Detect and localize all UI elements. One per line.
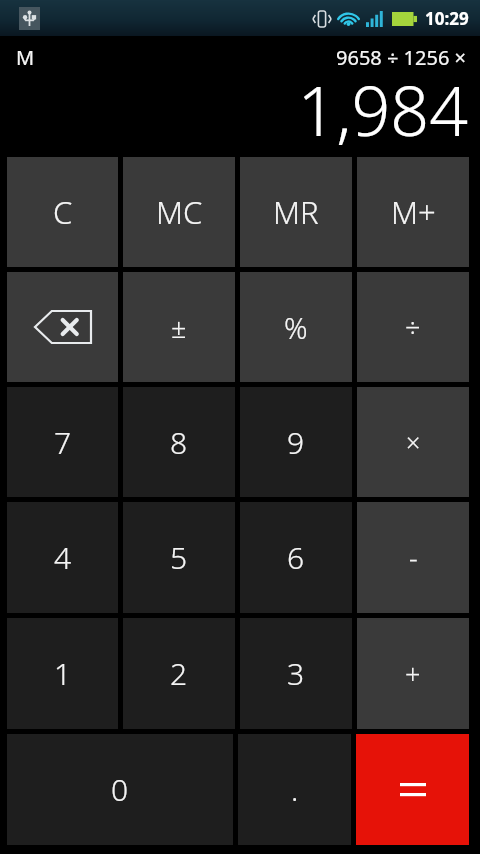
button[interactable]: C xyxy=(7,157,118,267)
staticText: 1 xyxy=(54,653,72,694)
button[interactable]: 9 xyxy=(240,387,352,497)
staticText: 3 xyxy=(287,653,305,694)
button[interactable]: 7 xyxy=(7,387,118,497)
button[interactable]: MR xyxy=(240,157,352,267)
staticText: 1,984 xyxy=(297,63,468,156)
staticText: 9658 ÷ 1256 × xyxy=(336,44,466,71)
button[interactable]: ± xyxy=(123,272,235,382)
staticText: M xyxy=(16,44,35,71)
button[interactable]: 8 xyxy=(123,387,235,497)
button[interactable]: ÷ xyxy=(357,272,469,382)
button[interactable]: - xyxy=(357,502,469,613)
button[interactable]: × xyxy=(357,387,469,497)
staticText: 7 xyxy=(54,422,72,463)
staticText: % xyxy=(284,308,308,347)
staticText: MR xyxy=(273,191,319,233)
staticText: . xyxy=(291,769,299,810)
staticText: 0 xyxy=(111,769,129,810)
button[interactable]: 2 xyxy=(123,618,235,729)
button[interactable]: 3 xyxy=(240,618,352,729)
staticText: MC xyxy=(156,191,203,233)
button[interactable]: 1 xyxy=(7,618,118,729)
staticText: M+ xyxy=(391,191,436,233)
button[interactable]: 6 xyxy=(240,502,352,613)
staticText: 6 xyxy=(287,537,305,578)
staticText: 10:29 xyxy=(425,7,469,30)
staticText: + xyxy=(405,655,421,692)
staticText: 9 xyxy=(287,422,305,463)
staticText: 5 xyxy=(170,537,188,578)
staticText: 2 xyxy=(170,653,188,694)
staticText: C xyxy=(53,191,73,233)
button[interactable]: % xyxy=(240,272,352,382)
staticText: 4 xyxy=(54,537,72,578)
button[interactable]: . xyxy=(238,734,351,845)
staticText: × xyxy=(406,425,421,459)
button[interactable]: Equals xyxy=(356,734,469,845)
button[interactable]: 0 xyxy=(7,734,233,845)
staticText: ÷ xyxy=(405,309,421,346)
button[interactable]: MC xyxy=(123,157,235,267)
button[interactable]: Backspace xyxy=(7,272,118,382)
staticText: ± xyxy=(171,309,187,346)
staticText: 8 xyxy=(170,422,188,463)
button[interactable]: 4 xyxy=(7,502,118,613)
button[interactable]: 5 xyxy=(123,502,235,613)
staticText: - xyxy=(409,539,418,576)
button[interactable]: M+ xyxy=(357,157,469,267)
button[interactable]: + xyxy=(357,618,469,729)
